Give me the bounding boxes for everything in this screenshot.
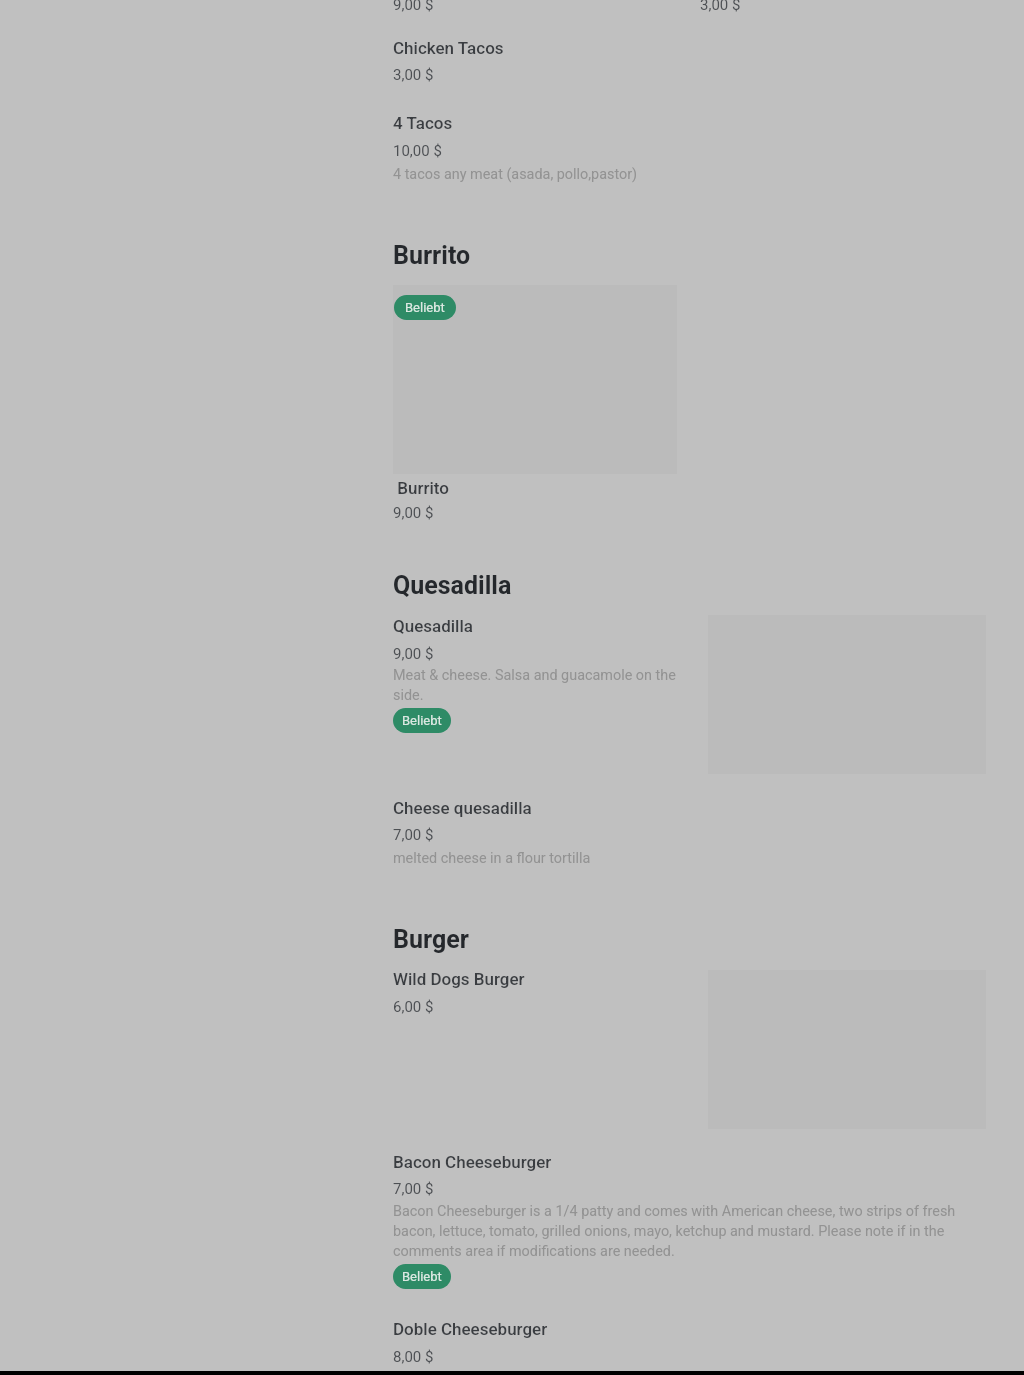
staticText: Burger — [393, 925, 469, 954]
button[interactable]: Chicken Tacos, 3,00 $ — [393, 30, 1024, 88]
staticText: 10,00 $ — [393, 142, 442, 160]
staticText: melted cheese in a flour tortilla — [393, 850, 733, 867]
button[interactable]: Beliebt — [393, 708, 451, 733]
staticText: 9,00 $ — [393, 645, 434, 663]
staticText: 4 tacos any meat (asada, pollo,pastor) — [393, 166, 733, 183]
staticText: 9,00 $ — [393, 504, 434, 522]
staticText: 7,00 $ — [393, 1180, 434, 1198]
button[interactable]: Quesadilla, 9,00 $ — [393, 610, 1024, 740]
staticText: Bacon Cheeseburger is a 1/4 patty and co… — [393, 1203, 973, 1259]
staticText: Cheese quesadilla — [393, 798, 532, 818]
staticText: Beliebt — [402, 1269, 442, 1284]
staticText: Quesadilla — [393, 571, 512, 600]
button[interactable]: Cheese quesadilla, 7,00 $ — [393, 792, 1024, 872]
button[interactable]: Bacon Cheeseburger, 7,00 $ — [393, 1146, 1024, 1296]
staticText: 6,00 $ — [393, 998, 434, 1016]
staticText: Wild Dogs Burger — [393, 969, 525, 989]
staticText: Beliebt — [405, 300, 445, 315]
staticText: 4 Tacos — [393, 113, 453, 133]
staticText: 9,00 $ — [393, 0, 434, 14]
staticText: 7,00 $ — [393, 826, 434, 844]
staticText: Burrito — [393, 478, 449, 498]
button[interactable]: Taco, 3,00 $ — [700, 0, 820, 18]
button[interactable]: 4 Tacos, 10,00 $ — [393, 105, 1024, 195]
staticText: Meat & cheese. Salsa and guacamole on th… — [393, 667, 685, 703]
staticText: 3,00 $ — [700, 0, 741, 14]
button[interactable]: Burrito, 9,00 $ — [393, 285, 1024, 525]
button[interactable]: Taco, 9,00 $ — [393, 0, 1024, 18]
staticText: 8,00 $ — [393, 1348, 434, 1366]
staticText: Burrito — [393, 241, 471, 270]
staticText: Bacon Cheeseburger — [393, 1152, 552, 1172]
staticText: Chicken Tacos — [393, 38, 504, 58]
button[interactable]: Doble Cheeseburger, 8,00 $ — [393, 1313, 1024, 1371]
button[interactable]: Beliebt — [393, 1264, 451, 1289]
staticText: Beliebt — [402, 713, 442, 728]
staticText: Quesadilla — [393, 616, 473, 636]
button[interactable]: Wild Dogs Burger, 6,00 $ — [393, 963, 1024, 1133]
button[interactable]: Burrito photo — [393, 285, 677, 474]
button[interactable]: Beliebt — [394, 295, 456, 320]
staticText: Doble Cheeseburger — [393, 1319, 548, 1339]
staticText: 3,00 $ — [393, 66, 434, 84]
